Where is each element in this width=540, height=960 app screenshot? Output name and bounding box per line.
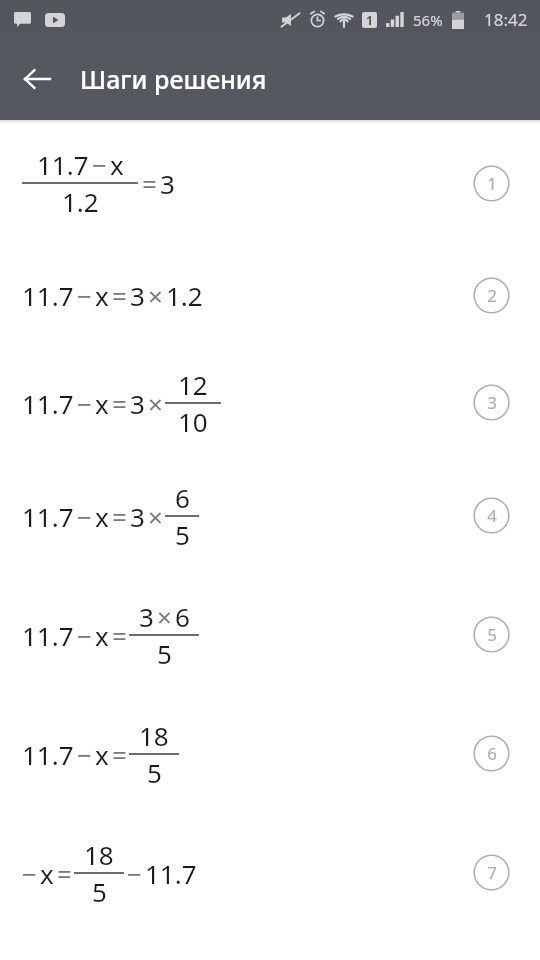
staticText: 11.7 <box>22 278 74 313</box>
staticText: 1.2 <box>166 278 203 313</box>
staticText: − <box>77 499 92 534</box>
staticText: − <box>22 856 37 891</box>
staticText: x <box>95 278 109 313</box>
staticText: 11.7 <box>22 386 74 421</box>
staticText: 7 <box>487 861 497 884</box>
staticText: 6 <box>175 480 190 515</box>
button[interactable]: Back <box>12 54 62 104</box>
staticText: 3 <box>130 499 145 534</box>
staticText: × <box>148 499 163 534</box>
staticText: 4 <box>487 504 497 527</box>
staticText: × <box>148 386 163 421</box>
staticText: = <box>112 499 127 534</box>
staticText: 18 <box>84 837 114 872</box>
staticText: 2 <box>487 284 497 307</box>
button[interactable]: 11.7 <box>0 456 540 575</box>
staticText: = <box>112 618 127 653</box>
staticText: 6 <box>487 742 497 765</box>
staticText: − <box>77 278 92 313</box>
staticText: 5 <box>487 623 497 646</box>
staticText: Шаги решения <box>80 62 267 96</box>
staticText: 5 <box>175 517 190 552</box>
staticText: = <box>57 856 72 891</box>
staticText: 11.7 <box>22 737 74 772</box>
staticText: − <box>77 386 92 421</box>
staticText: × <box>157 599 172 634</box>
staticText: 3 <box>130 386 145 421</box>
staticText: 18:42 <box>484 8 528 31</box>
staticText: 3 <box>160 166 175 201</box>
staticText: x <box>110 147 124 182</box>
staticText: 5 <box>92 874 107 909</box>
staticText: x <box>95 386 109 421</box>
staticText: 6 <box>175 599 190 634</box>
staticText: = <box>112 278 127 313</box>
staticText: = <box>112 386 127 421</box>
staticText: 3 <box>139 599 154 634</box>
staticText: 18 <box>139 718 169 753</box>
button[interactable]: 11.7 <box>0 349 540 456</box>
button[interactable]: 11.7 <box>0 575 540 694</box>
staticText: 11.7 <box>37 147 89 182</box>
staticText: × <box>148 278 163 313</box>
staticText: 11.7 <box>22 499 74 534</box>
button[interactable]: − <box>0 813 540 932</box>
staticText: 12 <box>178 367 208 402</box>
staticText: − <box>77 618 92 653</box>
staticText: 11.7 <box>22 618 74 653</box>
staticText: 1 <box>487 172 497 195</box>
staticText: 10 <box>178 404 208 439</box>
staticText: 56% <box>413 10 443 30</box>
staticText: 3 <box>487 391 497 414</box>
staticText: 1.2 <box>62 184 99 219</box>
staticText: x <box>95 618 109 653</box>
staticText: 11.7 <box>145 856 197 891</box>
button[interactable]: 11.7 <box>0 694 540 813</box>
staticText: 5 <box>157 636 172 671</box>
staticText: x <box>95 499 109 534</box>
staticText: x <box>40 856 54 891</box>
button[interactable]: 11.7 <box>0 124 540 242</box>
staticText: = <box>142 166 157 201</box>
staticText: − <box>127 856 142 891</box>
staticText: 3 <box>130 278 145 313</box>
staticText: − <box>77 737 92 772</box>
staticText: − <box>92 147 107 182</box>
staticText: 5 <box>147 755 162 790</box>
staticText: = <box>112 737 127 772</box>
staticText: 1 <box>366 12 373 28</box>
staticText: x <box>95 737 109 772</box>
button[interactable]: 11.7 <box>0 242 540 349</box>
